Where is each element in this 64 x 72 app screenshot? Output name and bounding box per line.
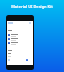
button[interactable] (8, 41, 28, 45)
staticText: Material UI Design Kit (0, 4, 64, 9)
button[interactable] (8, 33, 28, 37)
button[interactable]: Add (26, 59, 28, 61)
button[interactable] (8, 37, 28, 41)
